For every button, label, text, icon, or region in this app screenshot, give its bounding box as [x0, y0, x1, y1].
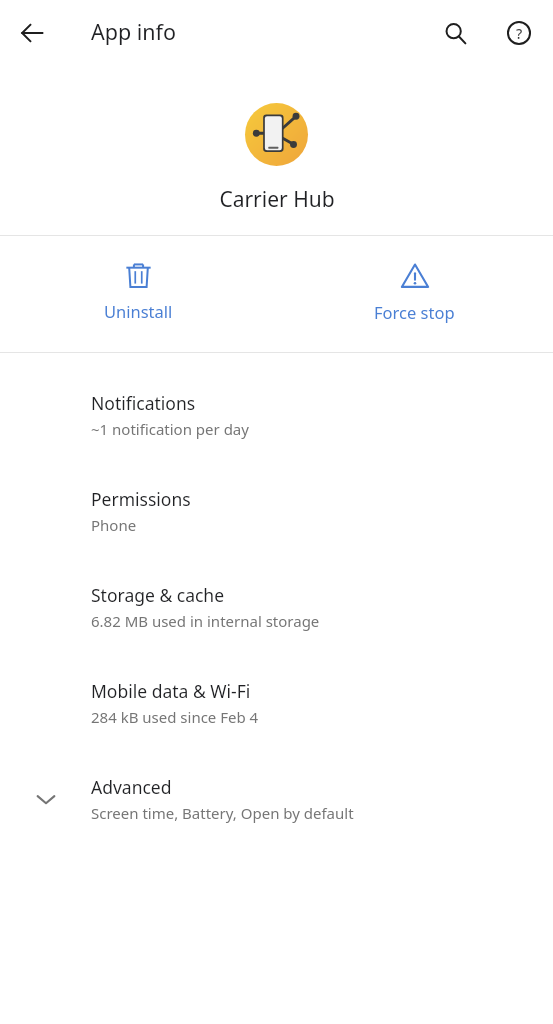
staticText: Notifications — [91, 391, 196, 415]
button[interactable]: Permissions — [0, 463, 553, 559]
button[interactable]: Uninstall — [0, 236, 276, 352]
staticText: 284 kB used since Feb 4 — [91, 707, 259, 727]
staticText: 6.82 MB used in internal storage — [91, 611, 320, 631]
staticText: Screen time, Battery, Open by default — [91, 803, 354, 823]
staticText: Uninstall — [104, 300, 173, 322]
staticText: Advanced — [91, 775, 172, 799]
button[interactable]: Advanced — [0, 751, 553, 847]
staticText: App info — [91, 17, 177, 46]
staticText: ~1 notification per day — [91, 419, 249, 439]
button[interactable]: Storage & cache — [0, 559, 553, 655]
button[interactable]: Mobile data & Wi-Fi — [0, 655, 553, 751]
button[interactable]: Notifications — [0, 367, 553, 463]
button[interactable]: Force stop — [276, 236, 553, 352]
staticText: Mobile data & Wi-Fi — [91, 679, 251, 703]
button[interactable]: Help — [495, 9, 543, 57]
staticText: Phone — [91, 515, 137, 535]
staticText: Carrier Hub — [219, 185, 335, 214]
staticText: Force stop — [374, 301, 455, 323]
button[interactable]: Search — [431, 9, 479, 57]
button[interactable]: Back — [8, 9, 56, 57]
staticText: Storage & cache — [91, 583, 225, 607]
staticText: Permissions — [91, 487, 191, 511]
staticText: ? — [516, 24, 523, 43]
